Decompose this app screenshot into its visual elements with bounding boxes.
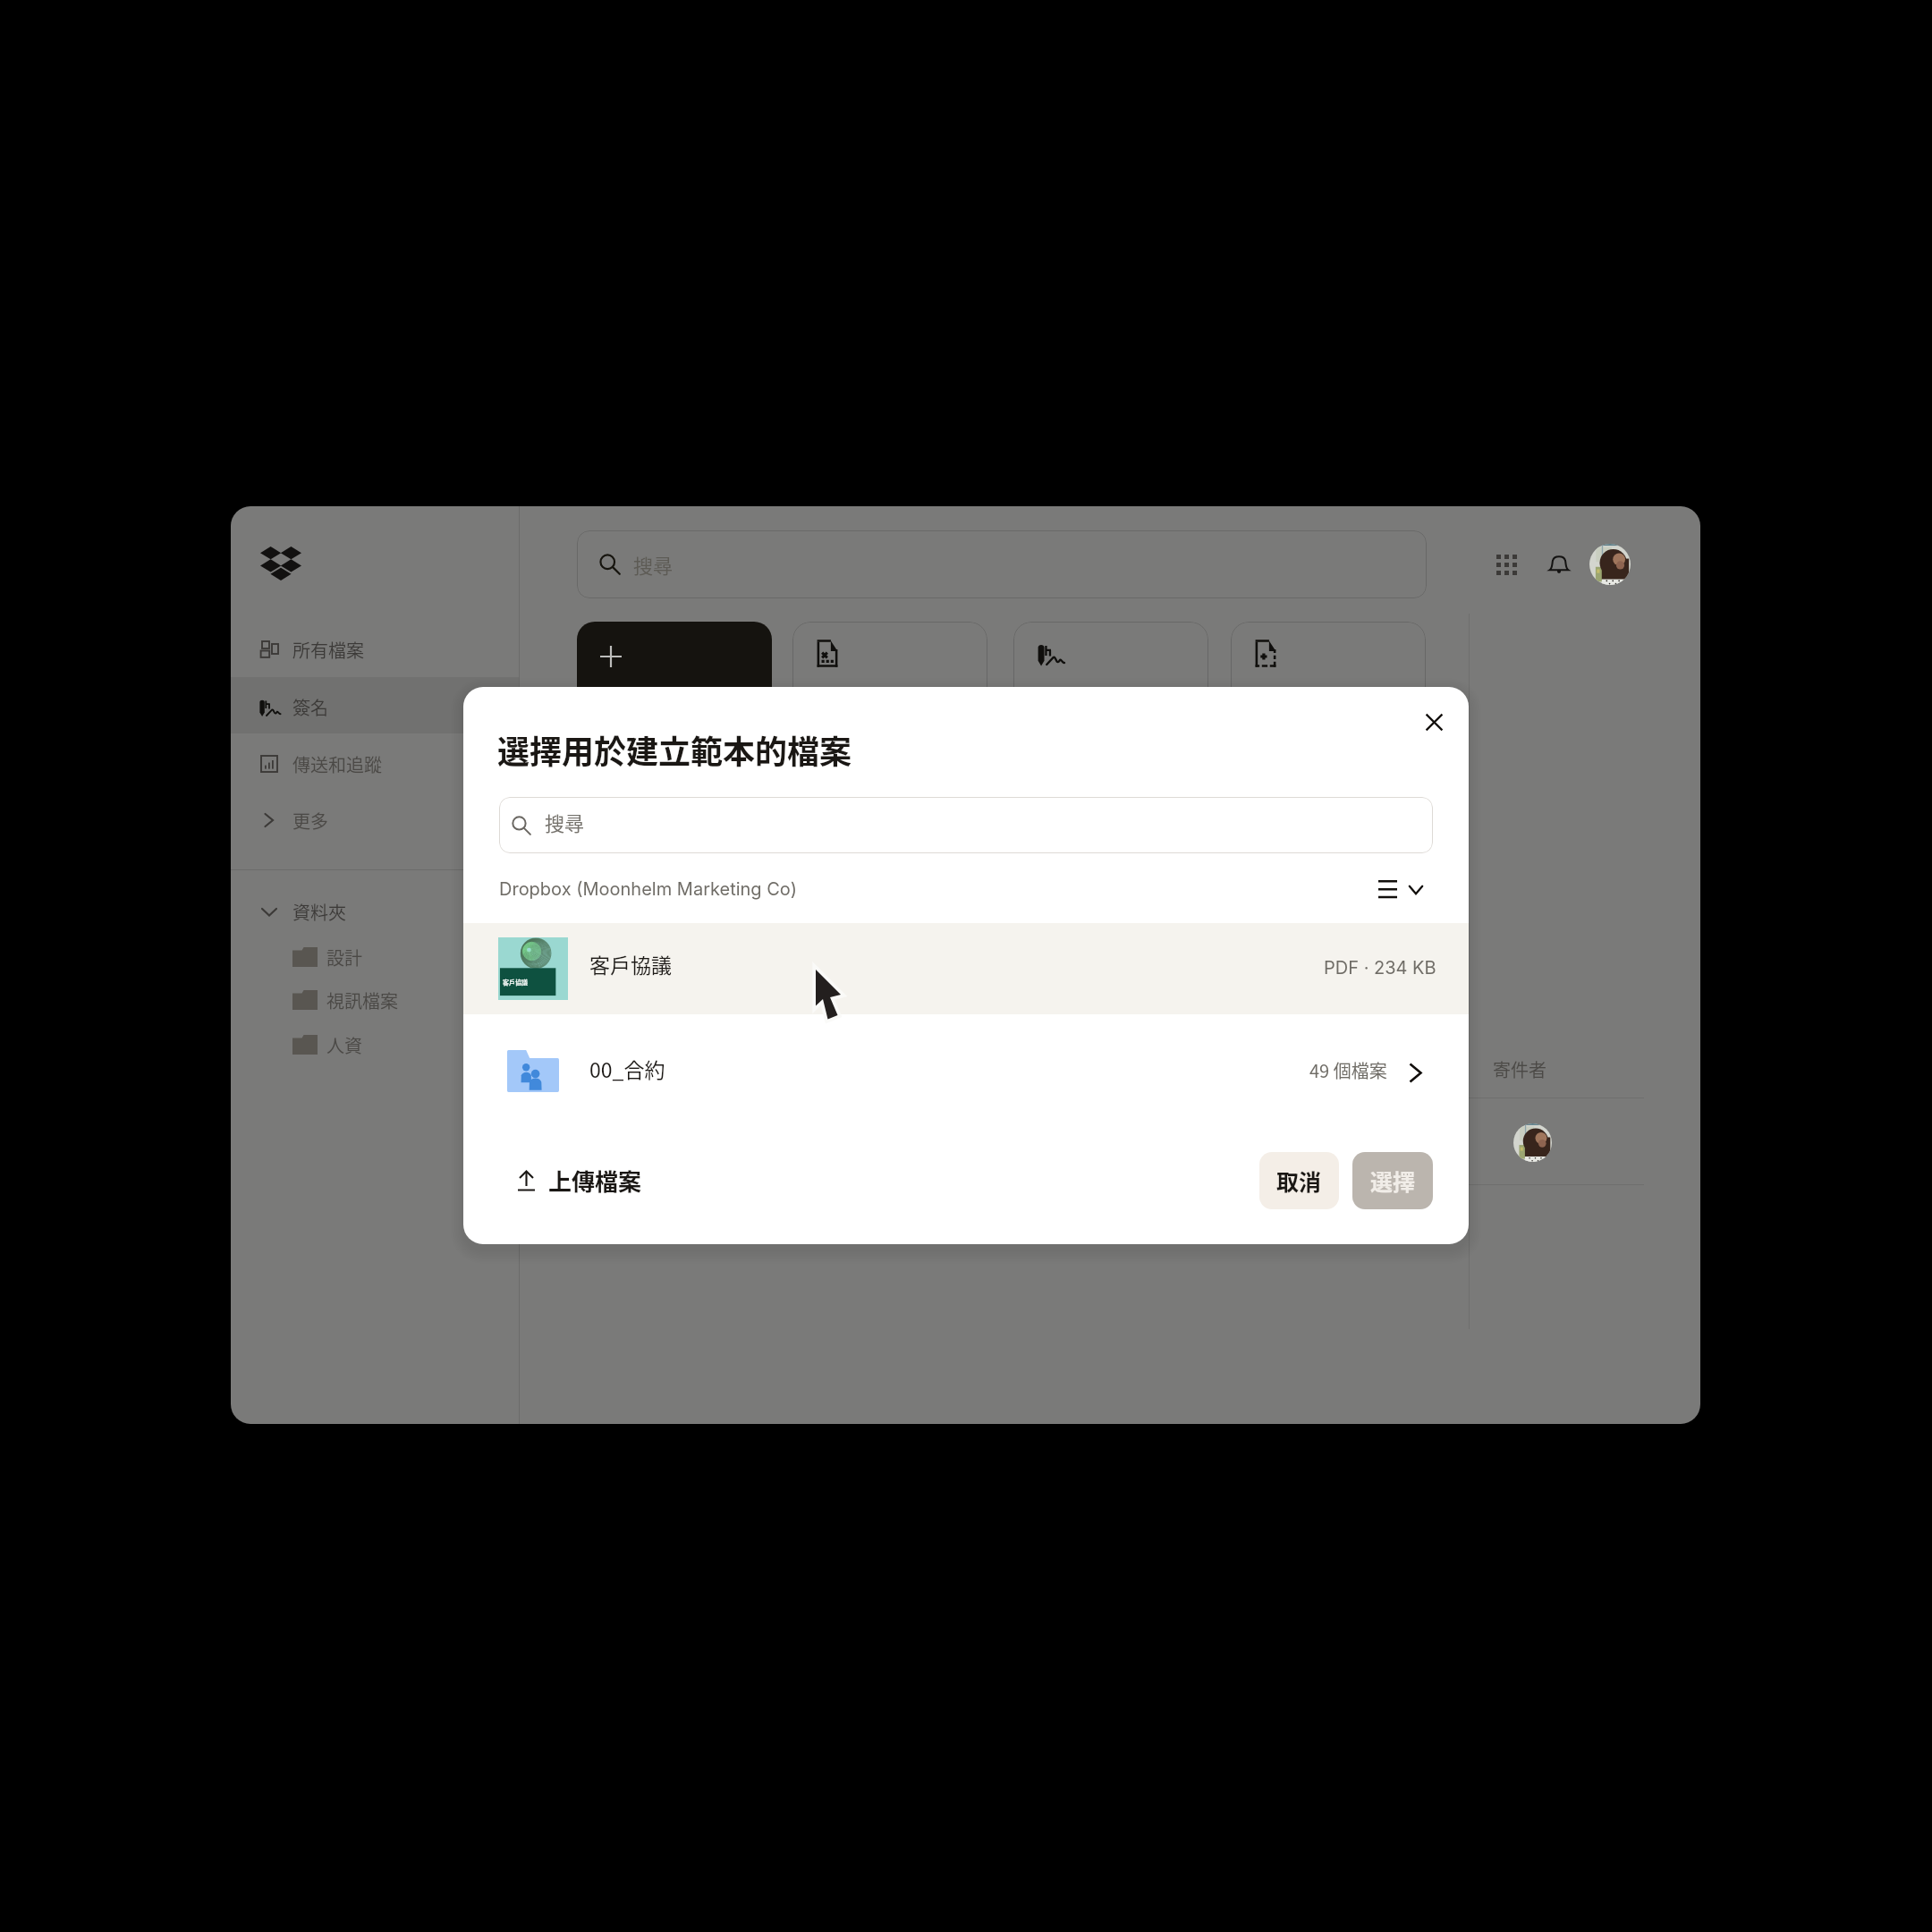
button[interactable]: 上傳檔案 [499, 1156, 696, 1206]
button[interactable]: 所有檔案 [231, 628, 519, 671]
button[interactable]: Apps [1485, 543, 1528, 586]
button[interactable]: Fill out a document [792, 622, 987, 738]
staticText: 視訊檔案 [326, 987, 398, 1013]
staticText: 人資 [326, 1032, 362, 1058]
button[interactable]: 00_合約 [463, 1025, 1469, 1120]
staticText: 簽名 [292, 694, 328, 720]
staticText: 資料夾 [292, 899, 346, 925]
button[interactable]: Create new [577, 622, 772, 738]
button[interactable]: 資料夾 [231, 890, 519, 933]
button[interactable]: Account [1589, 544, 1631, 585]
button[interactable]: 人資 [231, 1025, 519, 1064]
staticText: 選擇 [1370, 1165, 1416, 1197]
button[interactable]: 取消 [1259, 1152, 1339, 1209]
button[interactable]: 搜尋 [499, 797, 1433, 853]
staticText: Dropbox (Moonhelm Marketing Co) [499, 878, 797, 900]
staticText: PDF · 234 KB [1324, 957, 1436, 979]
staticText: 00_合約 [589, 1054, 665, 1083]
button[interactable]: 搜尋 [577, 530, 1427, 598]
button[interactable]: 更多 [231, 799, 519, 842]
staticText: 上傳檔案 [548, 1164, 642, 1198]
staticText: 取消 [1276, 1165, 1322, 1197]
button[interactable]: 視訊檔案 [231, 980, 519, 1020]
staticText: 49 個檔案 [1309, 1057, 1387, 1083]
staticText: 寄件者 [1493, 1056, 1546, 1082]
staticText: 更多 [292, 808, 328, 834]
button[interactable]: Dropbox home [252, 538, 309, 589]
button[interactable]: 選擇 [1352, 1152, 1433, 1209]
button[interactable]: 客戶協議 [463, 923, 1469, 1014]
button[interactable]: Create a template [1231, 622, 1426, 738]
staticText: 選擇用於建立範本的檔案 [497, 726, 852, 773]
staticText: 搜尋 [545, 808, 585, 836]
button[interactable]: Request a signature [1013, 622, 1208, 738]
button[interactable]: Account [1513, 1123, 1552, 1162]
staticText: 傳送和追蹤 [292, 751, 382, 777]
staticText: 客戶協議 [503, 978, 528, 987]
staticText: 搜尋 [633, 550, 674, 579]
button[interactable]: 傳送和追蹤 [231, 742, 519, 785]
button[interactable]: 簽名 [231, 685, 519, 728]
button[interactable]: Sort and view options [1372, 868, 1436, 911]
staticText: 客戶協議 [589, 949, 672, 979]
button[interactable]: Close [1409, 697, 1459, 747]
staticText: 所有檔案 [292, 637, 364, 663]
button[interactable]: Notifications [1538, 543, 1580, 586]
button[interactable]: 設計 [231, 937, 519, 977]
staticText: 設計 [326, 945, 362, 970]
